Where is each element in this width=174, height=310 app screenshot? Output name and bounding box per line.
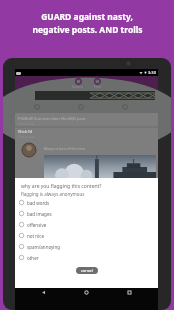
staticText: bad images bbox=[27, 211, 52, 217]
staticText: Buttons bbox=[72, 85, 84, 89]
staticText: other bbox=[27, 255, 39, 261]
staticText: not nice bbox=[27, 233, 44, 239]
staticText: PiNBoB Summerslam NickNG post bbox=[18, 116, 86, 122]
staticText: why are you flagging this content? bbox=[21, 183, 102, 190]
staticText: cancel bbox=[81, 268, 93, 273]
staticText: spam/annoying bbox=[27, 244, 61, 250]
staticText: Feed bbox=[94, 85, 101, 89]
button[interactable]: Feed bbox=[94, 78, 101, 89]
staticText: Nick14 bbox=[18, 129, 33, 135]
button[interactable]: Home bbox=[83, 289, 90, 296]
staticText: bad words bbox=[27, 200, 50, 206]
button[interactable]: Buttons bbox=[72, 78, 84, 89]
button[interactable]: offensive bbox=[15, 219, 158, 230]
button[interactable]: bad images bbox=[15, 208, 158, 219]
button[interactable]: cancel bbox=[76, 267, 98, 274]
staticText: 3:30 bbox=[148, 70, 156, 75]
staticText: GUARD against nasty, bbox=[41, 11, 133, 23]
button[interactable]: other bbox=[15, 252, 158, 263]
button[interactable]: Action bbox=[78, 104, 87, 110]
button[interactable]: Action bbox=[34, 104, 43, 110]
button[interactable]: Recents bbox=[126, 289, 133, 296]
staticText: flagging is always anonymous bbox=[21, 191, 85, 197]
button[interactable]: Action bbox=[122, 104, 131, 110]
staticText: negative posts. AND trolls bbox=[32, 24, 143, 36]
staticText: offensive bbox=[27, 222, 47, 228]
button[interactable]: bad words bbox=[15, 197, 158, 208]
button[interactable]: Back bbox=[40, 289, 47, 296]
button[interactable]: spam/annoying bbox=[15, 241, 158, 252]
button[interactable]: not nice bbox=[15, 230, 158, 241]
staticText: Always a best of the view bbox=[44, 146, 85, 151]
